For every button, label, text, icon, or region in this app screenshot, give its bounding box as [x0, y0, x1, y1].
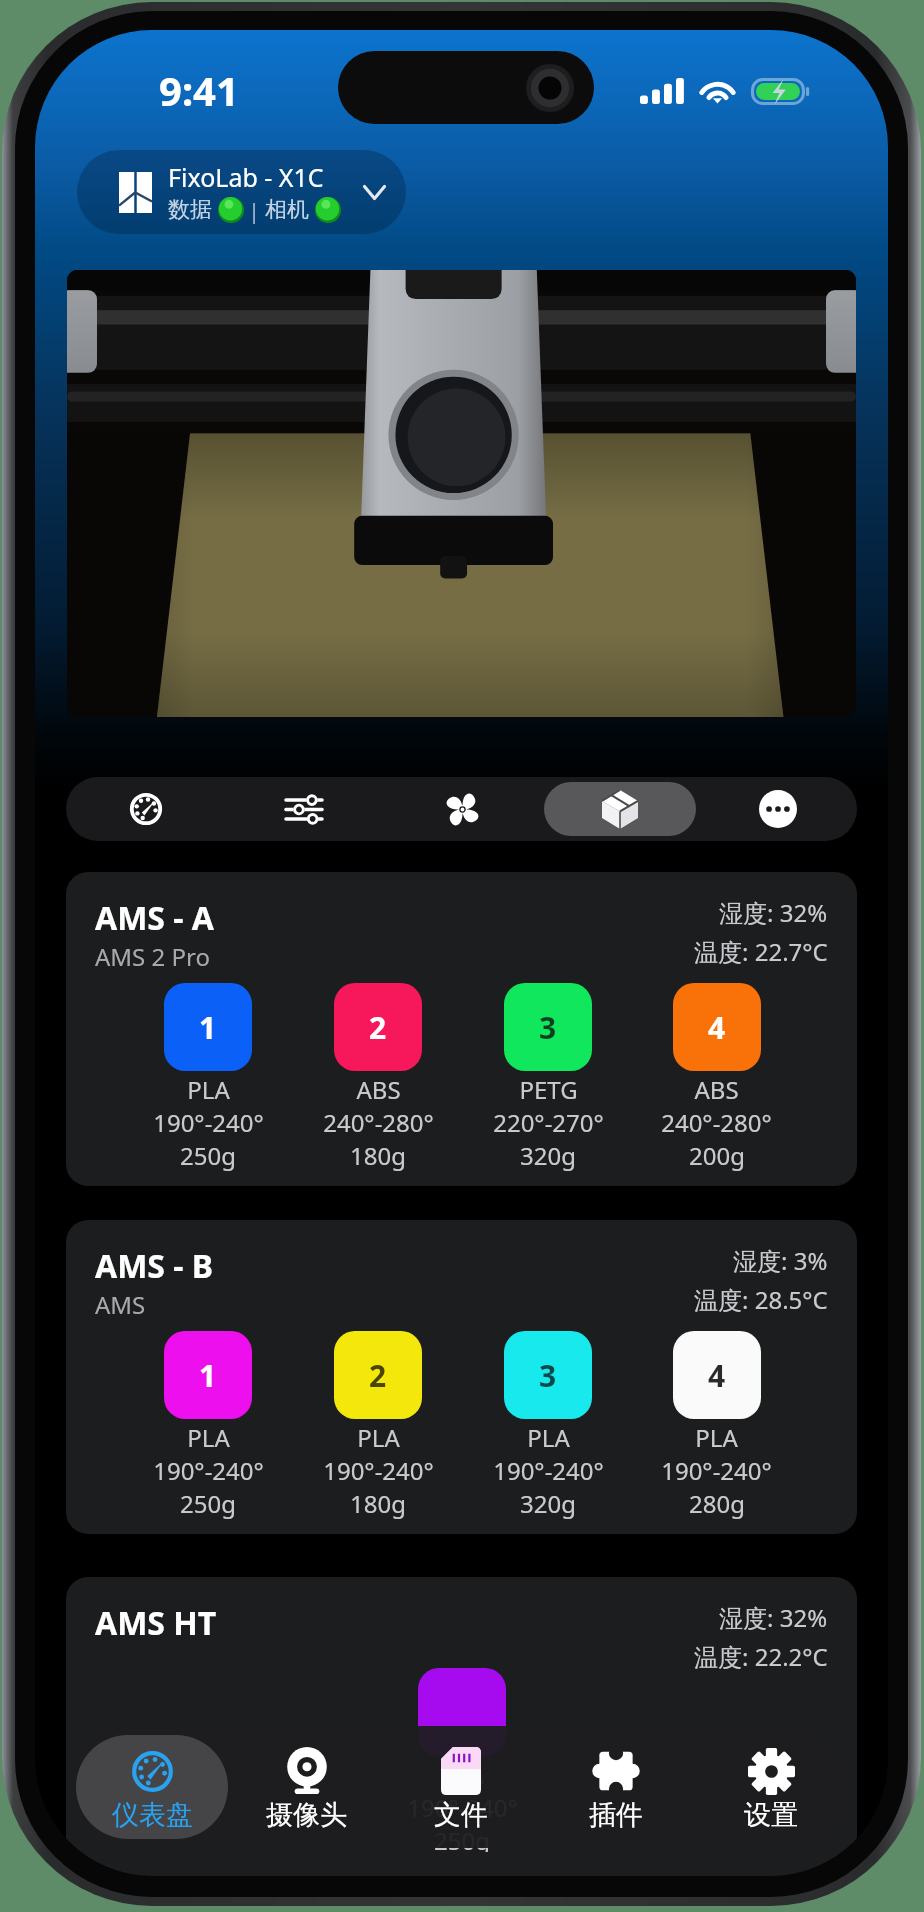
staticText: 240°-280° — [323, 1106, 434, 1139]
staticText: 设置 — [744, 1798, 798, 1832]
staticText: 温度: 28.5°C — [694, 1283, 828, 1316]
button[interactable]: 设置 — [693, 1726, 848, 1848]
staticText: 摄像头 — [266, 1798, 347, 1832]
staticText: 插件 — [589, 1798, 643, 1832]
staticText: 190°-240° — [407, 1791, 518, 1824]
staticText: 190°-240° — [323, 1454, 434, 1487]
button[interactable]: AMS - A — [66, 872, 857, 1186]
button[interactable]: 4 — [633, 1331, 800, 1520]
button[interactable]: Filament — [541, 777, 699, 841]
staticText: PLA — [527, 1421, 570, 1454]
staticText: PLA — [187, 1073, 230, 1106]
staticText: 180g — [350, 1487, 406, 1520]
staticText: AMS — [95, 1288, 146, 1321]
staticText: 280g — [689, 1487, 745, 1520]
staticText: 190°-240° — [153, 1106, 264, 1139]
staticText: AMS HT — [95, 1601, 217, 1645]
button[interactable]: 3 — [463, 983, 633, 1172]
staticText: 湿度: 3% — [733, 1244, 828, 1277]
staticText: 190°-240° — [493, 1454, 604, 1487]
staticText: 文件 — [434, 1798, 488, 1832]
staticText: 温度: 22.7°C — [694, 935, 828, 968]
staticText: 4 — [708, 1355, 726, 1396]
staticText: 190°-240° — [661, 1454, 772, 1487]
staticText: 湿度: 32% — [719, 1601, 828, 1634]
button[interactable] — [67, 270, 856, 717]
button[interactable]: 1 — [123, 1331, 293, 1520]
button[interactable]: 4 — [633, 983, 800, 1172]
button[interactable]: 文件 — [383, 1726, 538, 1848]
button[interactable]: 仪表盘 — [75, 1726, 229, 1848]
staticText: PLA — [441, 1758, 484, 1791]
button[interactable]: AMS HT — [66, 1577, 857, 1876]
staticText: PETG — [519, 1073, 578, 1106]
button[interactable]: 摄像头 — [229, 1726, 383, 1848]
staticText: 1 — [199, 1355, 217, 1396]
staticText: 2 — [369, 1355, 387, 1396]
button[interactable]: More — [699, 777, 857, 841]
button[interactable]: 3 — [463, 1331, 633, 1520]
button[interactable]: Controls — [225, 777, 383, 841]
staticText: AMS 2 Pro — [95, 940, 210, 973]
staticText: AMS - A — [95, 896, 214, 940]
staticText: 3 — [539, 1355, 557, 1396]
staticText: 250g — [180, 1487, 236, 1520]
staticText: 320g — [520, 1139, 576, 1172]
button[interactable]: 1 — [123, 983, 293, 1172]
button[interactable]: FixoLab - X1C — [77, 150, 406, 234]
staticText: 190°-240° — [153, 1454, 264, 1487]
staticText: 湿度: 32% — [719, 896, 828, 929]
staticText: 320g — [520, 1487, 576, 1520]
staticText: 200g — [689, 1139, 745, 1172]
button[interactable]: 2 — [293, 983, 463, 1172]
staticText: 3 — [539, 1007, 557, 1048]
staticText: PLA — [187, 1421, 230, 1454]
staticText: FixoLab - X1C — [168, 160, 324, 194]
staticText: 仪表盘 — [112, 1798, 193, 1832]
staticText: 240°-280° — [661, 1106, 772, 1139]
staticText: 温度: 22.2°C — [694, 1640, 828, 1673]
button[interactable]: Fan — [383, 777, 541, 841]
staticText: 250g — [180, 1139, 236, 1172]
staticText: 4 — [708, 1007, 726, 1048]
staticText: 250g — [434, 1824, 490, 1852]
button[interactable]: 插件 — [538, 1726, 693, 1848]
staticText: 180g — [350, 1139, 406, 1172]
staticText: 2 — [369, 1007, 387, 1048]
staticText: AMS - B — [95, 1244, 214, 1288]
button[interactable]: AMS - B — [66, 1220, 857, 1534]
button[interactable]: 2 — [293, 1331, 463, 1520]
button[interactable]: PLA — [377, 1668, 547, 1852]
staticText: | — [248, 195, 261, 225]
staticText: 1 — [199, 1007, 217, 1048]
staticText: ABS — [694, 1073, 739, 1106]
staticText: 9:41 — [159, 63, 239, 117]
button[interactable]: Dashboard — [66, 777, 225, 841]
staticText: 数据 — [168, 196, 212, 224]
staticText: PLA — [357, 1421, 400, 1454]
staticText: 相机 — [265, 196, 309, 224]
staticText: PLA — [695, 1421, 738, 1454]
staticText: ABS — [356, 1073, 401, 1106]
staticText: 220°-270° — [493, 1106, 604, 1139]
